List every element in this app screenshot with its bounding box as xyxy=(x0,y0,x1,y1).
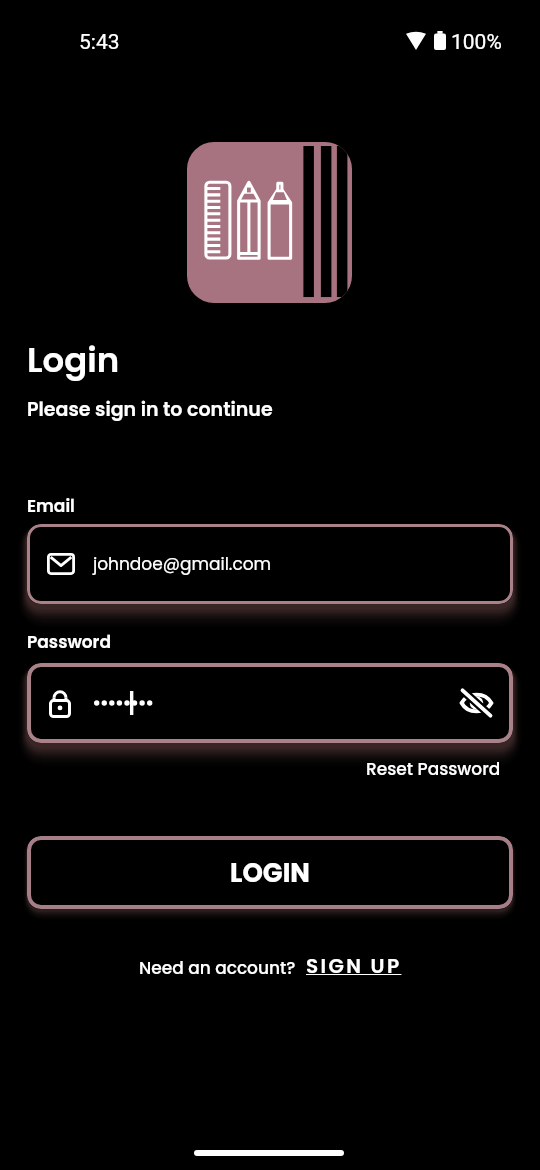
staticText: 100% xyxy=(451,30,502,55)
staticText: Login xyxy=(27,336,120,384)
other: Wi-Fi xyxy=(406,32,426,50)
button[interactable]: Show password xyxy=(27,663,513,743)
staticText: Need an account? xyxy=(139,956,296,980)
staticText: LOGIN xyxy=(230,855,310,891)
staticText: SIGN UP xyxy=(306,952,402,980)
button[interactable]: LOGIN xyxy=(27,836,513,909)
staticText: Please sign in to continue xyxy=(27,396,273,423)
button[interactable]: Reset Password xyxy=(366,757,501,781)
other: Battery xyxy=(434,31,446,50)
button[interactable]: johndoe@gmail.com xyxy=(27,524,513,604)
staticText: Email xyxy=(27,494,75,518)
staticText: Reset Password xyxy=(366,757,501,781)
button[interactable]: Show password xyxy=(457,684,495,722)
staticText: Password xyxy=(27,630,111,654)
staticText: 5:43 xyxy=(79,30,120,55)
button[interactable]: SIGN UP xyxy=(306,952,402,980)
staticText: johndoe@gmail.com xyxy=(93,552,272,576)
